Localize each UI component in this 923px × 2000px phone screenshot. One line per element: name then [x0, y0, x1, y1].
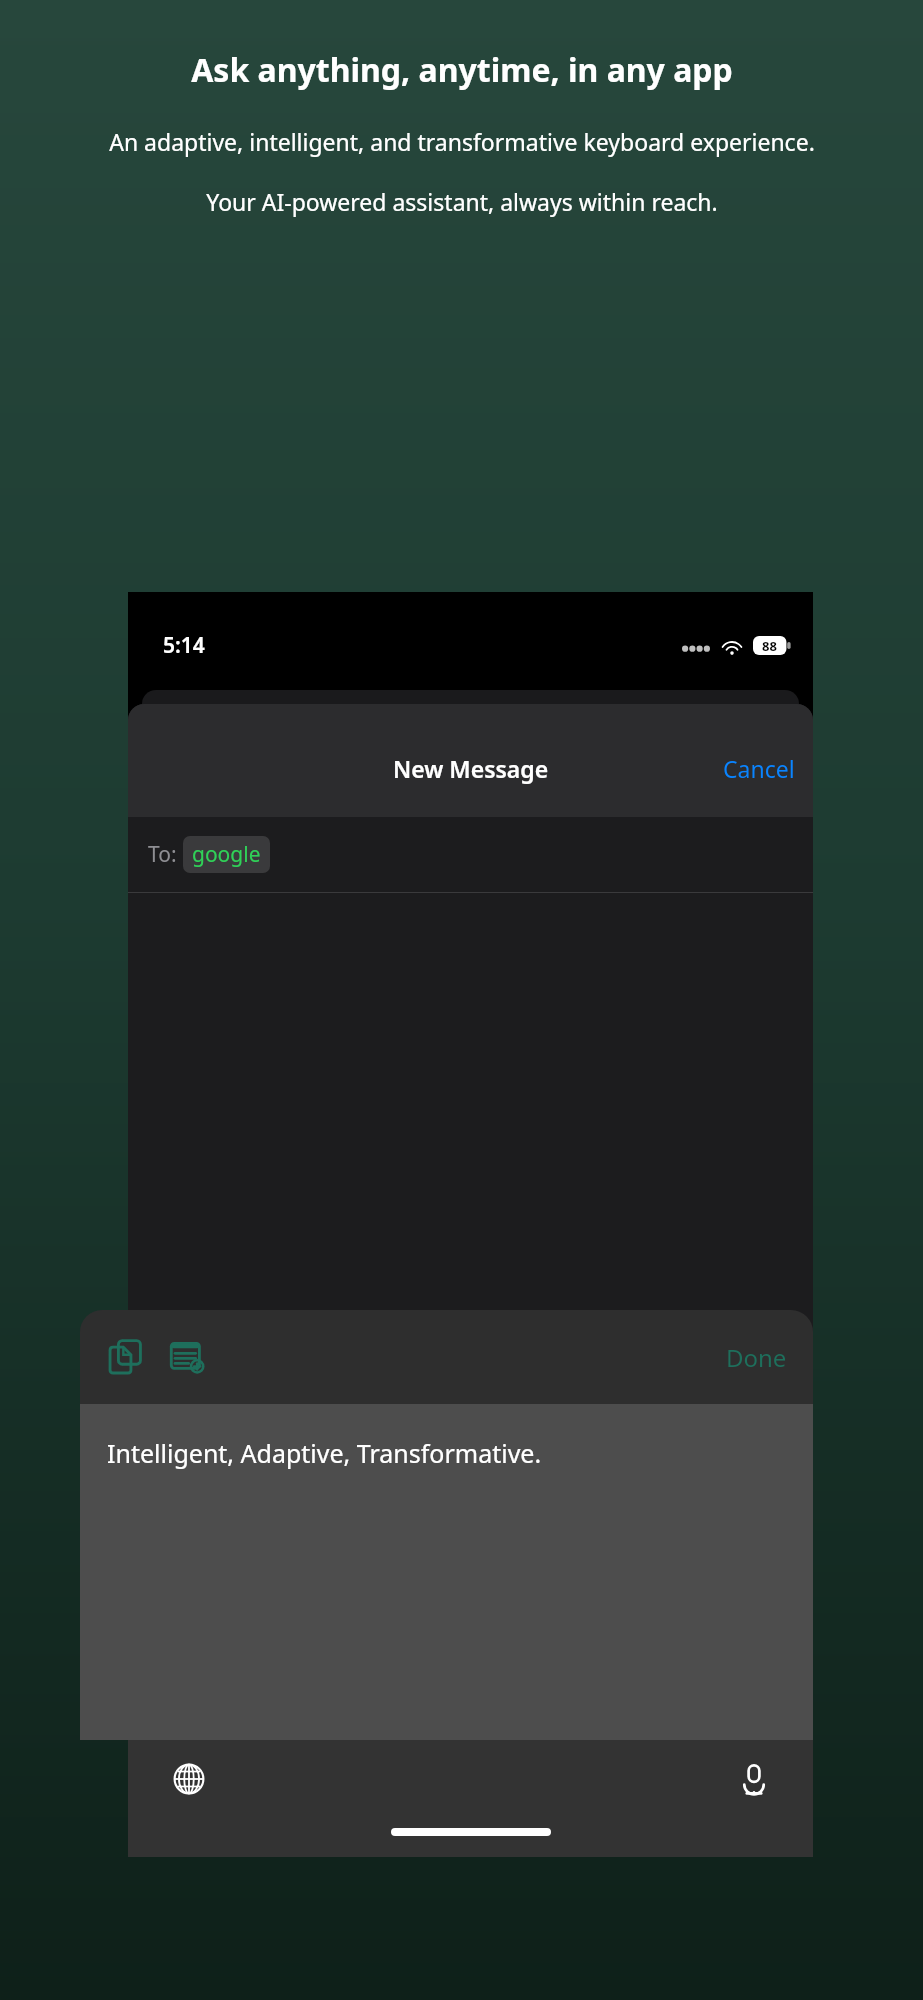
staticText: To: [148, 840, 177, 869]
button[interactable]: Voice input [733, 1758, 775, 1800]
button[interactable]: Change keyboard language [168, 1758, 210, 1800]
button[interactable]: Cancel [711, 745, 807, 792]
button[interactable]: New note [162, 1331, 214, 1383]
button[interactable]: Done [714, 1333, 799, 1382]
staticText: Done [726, 1341, 787, 1374]
staticText: Cancel [723, 753, 795, 784]
staticText: Intelligent, Adaptive, Transformative. [107, 1436, 542, 1470]
staticText: New Message [393, 753, 549, 784]
staticText: 88 [762, 637, 777, 655]
button[interactable]: To: [128, 817, 813, 892]
staticText: 5:14 [163, 631, 205, 660]
staticText: Your AI-powered assistant, always within… [206, 186, 718, 217]
staticText: google [192, 840, 261, 869]
staticText: An adaptive, intelligent, and transforma… [109, 126, 815, 157]
button[interactable]: Intelligent, Adaptive, Transformative. [80, 1404, 813, 1740]
staticText: Ask anything, anytime, in any app [191, 48, 733, 92]
button[interactable]: Copy [100, 1331, 152, 1383]
